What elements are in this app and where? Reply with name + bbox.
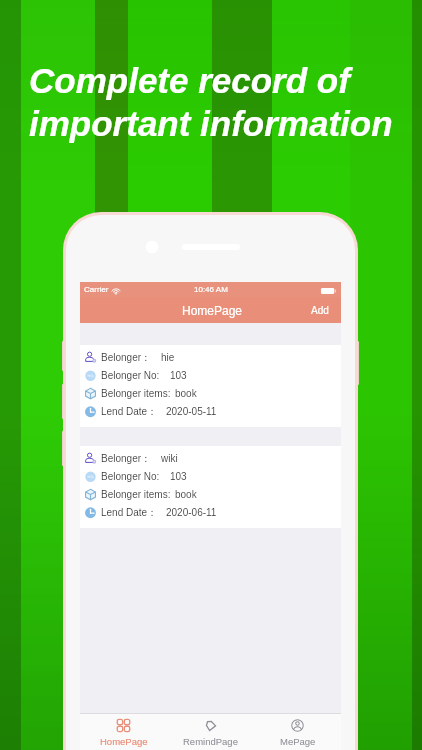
staticText: HomePage xyxy=(182,304,243,317)
staticText: Lend Date： xyxy=(101,506,158,519)
staticText: Belonger： xyxy=(101,452,152,465)
staticText: Belonger： xyxy=(101,351,152,364)
staticText: 2020-06-11 xyxy=(166,507,217,518)
staticText: 103 xyxy=(170,370,187,381)
staticText: Belonger items: xyxy=(101,489,171,500)
staticText: Complete record of xyxy=(29,61,350,100)
staticText: Belonger items: xyxy=(101,388,171,399)
button[interactable]: Add xyxy=(304,300,336,321)
staticText: 103 xyxy=(170,471,187,482)
other: RemindPage xyxy=(204,719,217,732)
staticText: Belonger No: xyxy=(101,471,160,482)
button[interactable]: Belonger： xyxy=(80,446,341,528)
staticText: 2020-05-11 xyxy=(166,406,217,417)
button[interactable]: HomePage xyxy=(80,718,167,748)
staticText: book xyxy=(175,388,197,399)
staticText: hie xyxy=(161,352,175,363)
staticText: 10:46 AM xyxy=(194,285,228,294)
staticText: Lend Date： xyxy=(101,405,158,418)
staticText: important information xyxy=(29,104,393,143)
staticText: Carrier xyxy=(84,285,109,294)
button[interactable]: Belonger： xyxy=(80,345,341,427)
staticText: book xyxy=(175,489,197,500)
staticText: wiki xyxy=(161,453,178,464)
staticText: HomePage xyxy=(100,736,148,747)
staticText: Belonger No: xyxy=(101,370,160,381)
other: MePage xyxy=(291,719,304,732)
other: HomePage xyxy=(117,719,130,732)
staticText: Add xyxy=(311,305,329,316)
staticText: MePage xyxy=(280,736,316,747)
button[interactable]: RemindPage xyxy=(167,718,254,748)
staticText: RemindPage xyxy=(183,736,238,747)
button[interactable]: MePage xyxy=(254,718,341,748)
